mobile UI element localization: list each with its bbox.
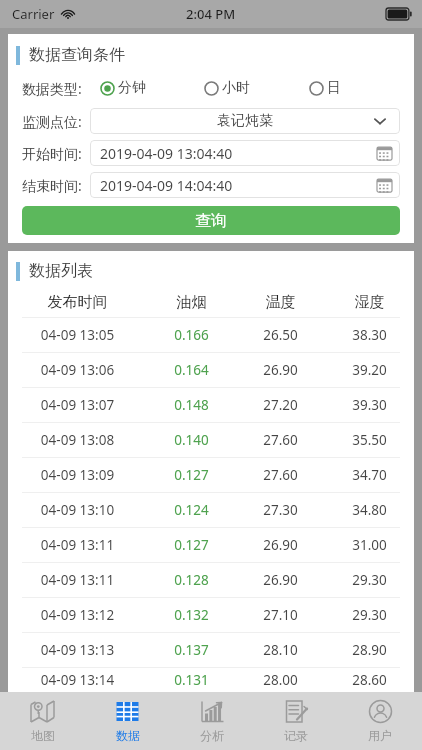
staticText: 监测点位: <box>22 112 82 131</box>
staticText: 27.10 <box>236 606 325 624</box>
staticText: 04-09 13:13 <box>8 641 147 659</box>
staticText: 27.60 <box>236 431 325 449</box>
button[interactable]: 04-09 13:08 <box>8 422 414 457</box>
staticText: 地图 <box>31 728 55 743</box>
staticText: 分析 <box>200 728 224 743</box>
button[interactable]: 地图 <box>0 692 85 750</box>
staticText: 查询 <box>195 211 227 231</box>
button[interactable]: 查询 <box>22 206 400 235</box>
staticText: 湿度 <box>325 293 414 312</box>
staticText: 31.00 <box>325 536 414 554</box>
other: 选择日期 <box>377 146 392 161</box>
staticText: 数据类型: <box>22 79 82 98</box>
staticText: 2019-04-09 13:04:40 <box>100 144 233 163</box>
staticText: 0.132 <box>147 606 236 624</box>
staticText: 29.30 <box>325 606 414 624</box>
staticText: 记录 <box>284 728 308 743</box>
button[interactable]: 04-09 13:09 <box>8 457 414 492</box>
staticText: 35.50 <box>325 431 414 449</box>
staticText: 结束时间: <box>22 176 82 195</box>
button[interactable]: 分析 <box>170 692 254 750</box>
staticText: 04-09 13:10 <box>8 501 147 519</box>
staticText: 用户 <box>368 728 392 743</box>
staticText: 34.80 <box>325 501 414 519</box>
staticText: 2:04 PM <box>186 5 236 23</box>
staticText: 0.140 <box>147 431 236 449</box>
staticText: 26.90 <box>236 571 325 589</box>
button[interactable]: 04-09 13:11 <box>8 562 414 597</box>
staticText: 油烟 <box>147 293 236 312</box>
staticText: 04-09 13:06 <box>8 361 147 379</box>
button[interactable]: 日 <box>309 74 414 102</box>
staticText: 26.50 <box>236 326 325 344</box>
staticText: 38.30 <box>325 326 414 344</box>
staticText: 04-09 13:11 <box>8 571 147 589</box>
staticText: 数据 <box>116 728 140 743</box>
staticText: 0.131 <box>147 671 236 689</box>
staticText: 39.20 <box>325 361 414 379</box>
staticText: 04-09 13:05 <box>8 326 147 344</box>
button[interactable]: 小时 <box>204 74 309 102</box>
staticText: 04-09 13:07 <box>8 396 147 414</box>
staticText: Carrier <box>12 5 55 23</box>
staticText: 日 <box>327 79 341 97</box>
staticText: 开始时间: <box>22 144 82 163</box>
button[interactable]: 数据 <box>85 692 170 750</box>
staticText: 28.10 <box>236 641 325 659</box>
staticText: 28.90 <box>325 641 414 659</box>
staticText: 28.00 <box>236 671 325 689</box>
other: 选择日期 <box>377 178 392 193</box>
staticText: 39.30 <box>325 396 414 414</box>
staticText: 温度 <box>236 293 325 312</box>
button[interactable]: 04-09 13:10 <box>8 492 414 527</box>
staticText: 0.137 <box>147 641 236 659</box>
staticText: 04-09 13:11 <box>8 536 147 554</box>
button[interactable]: 袁记炖菜 <box>90 108 400 134</box>
staticText: 袁记炖菜 <box>217 112 273 130</box>
button[interactable]: 2019-04-09 13:04:40 <box>90 140 400 166</box>
staticText: 04-09 13:14 <box>8 671 147 689</box>
staticText: 0.128 <box>147 571 236 589</box>
button[interactable]: 2019-04-09 14:04:40 <box>90 172 400 198</box>
staticText: 0.124 <box>147 501 236 519</box>
button[interactable]: 04-09 13:12 <box>8 597 414 632</box>
staticText: 小时 <box>222 79 250 97</box>
staticText: 26.90 <box>236 361 325 379</box>
staticText: 26.90 <box>236 536 325 554</box>
staticText: 28.60 <box>325 671 414 689</box>
staticText: 04-09 13:08 <box>8 431 147 449</box>
button[interactable]: 用户 <box>338 692 422 750</box>
staticText: 0.148 <box>147 396 236 414</box>
staticText: 27.20 <box>236 396 325 414</box>
staticText: 分钟 <box>118 79 146 97</box>
button[interactable]: 04-09 13:07 <box>8 387 414 422</box>
staticText: 0.127 <box>147 536 236 554</box>
staticText: 0.127 <box>147 466 236 484</box>
staticText: 数据列表 <box>29 261 93 281</box>
staticText: 数据查询条件 <box>29 45 125 65</box>
staticText: 04-09 13:12 <box>8 606 147 624</box>
staticText: 34.70 <box>325 466 414 484</box>
button[interactable]: 04-09 13:13 <box>8 632 414 667</box>
button[interactable]: 分钟 <box>100 74 204 102</box>
staticText: 27.60 <box>236 466 325 484</box>
staticText: 0.164 <box>147 361 236 379</box>
staticText: 0.166 <box>147 326 236 344</box>
button[interactable]: 04-09 13:06 <box>8 352 414 387</box>
staticText: 27.30 <box>236 501 325 519</box>
staticText: 2019-04-09 14:04:40 <box>100 176 233 195</box>
button[interactable]: 记录 <box>254 692 338 750</box>
button[interactable]: 04-09 13:14 <box>8 667 414 692</box>
button[interactable]: 04-09 13:05 <box>8 317 414 352</box>
button[interactable]: 04-09 13:11 <box>8 527 414 562</box>
staticText: 04-09 13:09 <box>8 466 147 484</box>
staticText: 发布时间 <box>8 293 147 312</box>
staticText: 29.30 <box>325 571 414 589</box>
